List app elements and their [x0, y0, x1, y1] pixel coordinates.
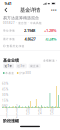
staticText: 近1年 [4, 64, 12, 68]
staticText: 累计净值 [3, 37, 15, 41]
staticText: 2021 [6, 104, 8, 119]
button[interactable]: Back [2, 6, 10, 14]
staticText: +1.28% [44, 28, 57, 33]
button[interactable]: 业绩解读 › [43, 59, 57, 62]
staticText: 成立来 [30, 64, 39, 68]
staticText: 0% [2, 104, 6, 108]
button[interactable]: 成立来 [29, 64, 41, 68]
staticText: 30% [2, 93, 8, 97]
button[interactable]: 近3年 [16, 64, 27, 68]
staticText: 2023 [26, 108, 30, 115]
staticText: 2022 [16, 104, 18, 119]
staticText: 4.8627 [24, 36, 35, 42]
staticText: 2.1948 [24, 28, 35, 33]
staticText: 15% [2, 99, 8, 102]
staticText: ••• [51, 7, 57, 13]
staticText: 本基金 [5, 71, 14, 75]
staticText: 9:41 [4, 1, 11, 6]
button[interactable]: 查看历史净值 [0, 43, 60, 48]
staticText: 沪深300 [19, 71, 31, 75]
staticText: 查看历史净值 [6, 44, 24, 48]
button[interactable]: More [50, 6, 58, 14]
staticText: 45% [2, 88, 8, 91]
staticText: 业绩解读 › [43, 59, 57, 62]
staticText: 单位净值 [3, 29, 15, 32]
staticText: -0.24% [45, 36, 57, 42]
staticText: 2024 [38, 108, 42, 115]
staticText: 近3年 [17, 64, 25, 68]
button[interactable]: 近1年 [3, 64, 14, 68]
staticText: 60% [2, 82, 8, 85]
staticText: 基金业绩 [3, 58, 19, 63]
staticText: 易方达蓝筹精选混合 [3, 15, 39, 20]
staticText: 基金详情 [20, 7, 40, 13]
staticText: 005827 · 混合型 · 中高风险 [3, 21, 42, 25]
staticText: 2025 [50, 108, 54, 115]
staticText: 阶段涨幅 [3, 118, 19, 123]
